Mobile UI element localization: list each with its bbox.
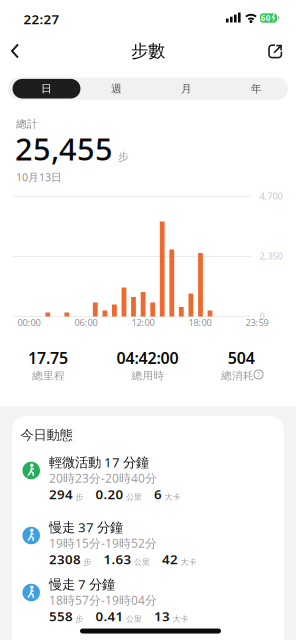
staticText: 慢走 37 分鐘	[49, 518, 123, 536]
staticText: 2,350	[259, 250, 282, 262]
staticText: 19時15分-19時52分	[49, 535, 157, 551]
staticText: 大卡	[180, 557, 196, 567]
staticText: 00:00	[17, 316, 40, 329]
button[interactable]: 年	[222, 79, 290, 98]
staticText: 504	[228, 347, 255, 368]
staticText: 步	[83, 557, 91, 567]
staticText: 23:59	[245, 316, 268, 329]
button[interactable]: Share	[262, 38, 288, 64]
staticText: 42	[162, 550, 178, 568]
staticText: 步數	[131, 40, 165, 62]
staticText: 60	[261, 13, 271, 23]
staticText: 17.75	[28, 347, 68, 368]
staticText: 月	[181, 82, 192, 95]
staticText: 0	[259, 310, 264, 322]
staticText: 步	[118, 150, 129, 163]
button[interactable]: 輕微活動 17 分鐘	[0, 450, 296, 506]
staticText: 10月13日	[16, 170, 62, 184]
staticText: 294	[49, 485, 73, 503]
staticText: 總消耗	[221, 369, 254, 382]
staticText: 22:27	[23, 10, 59, 28]
staticText: 6	[154, 485, 162, 503]
staticText: 大卡	[172, 614, 188, 624]
staticText: ?	[257, 370, 260, 379]
staticText: 20時23分-20時40分	[49, 470, 157, 486]
staticText: 公里	[126, 614, 142, 624]
staticText: 25,455	[15, 128, 113, 169]
staticText: 0.20	[95, 485, 123, 503]
staticText: 18:00	[188, 316, 211, 329]
staticText: 18時57分-19時04分	[49, 592, 157, 608]
staticText: 總計	[16, 117, 38, 130]
staticText: 04:42:00	[116, 347, 178, 368]
staticText: 1.63	[103, 550, 131, 568]
staticText: 週	[111, 82, 122, 95]
staticText: 步	[75, 614, 83, 624]
button[interactable]: Back	[0, 37, 28, 65]
staticText: 輕微活動 17 分鐘	[49, 453, 149, 471]
button[interactable]: 週	[82, 79, 150, 98]
staticText: 總用時	[131, 369, 164, 382]
staticText: 公里	[126, 492, 142, 502]
staticText: 0.41	[95, 607, 123, 625]
staticText: 慢走 7 分鐘	[49, 575, 115, 593]
button[interactable]: About calories	[252, 368, 265, 381]
staticText: 06:00	[74, 316, 97, 329]
staticText: 12:00	[131, 316, 154, 329]
staticText: 公里	[134, 557, 150, 567]
button[interactable]: 月	[152, 79, 220, 98]
staticText: 步	[75, 492, 83, 502]
staticText: 2308	[49, 550, 81, 568]
staticText: 558	[49, 607, 73, 625]
staticText: 大卡	[164, 492, 180, 502]
staticText: 年	[251, 82, 262, 95]
staticText: 總里程	[32, 369, 65, 382]
button[interactable]: 慢走 7 分鐘	[0, 572, 296, 628]
button[interactable]: 慢走 37 分鐘	[0, 515, 296, 571]
staticText: 13	[154, 607, 170, 625]
button[interactable]: 日	[12, 79, 80, 98]
staticText: 日	[41, 82, 52, 95]
staticText: 今日動態	[20, 427, 72, 443]
staticText: 4,700	[259, 190, 282, 202]
